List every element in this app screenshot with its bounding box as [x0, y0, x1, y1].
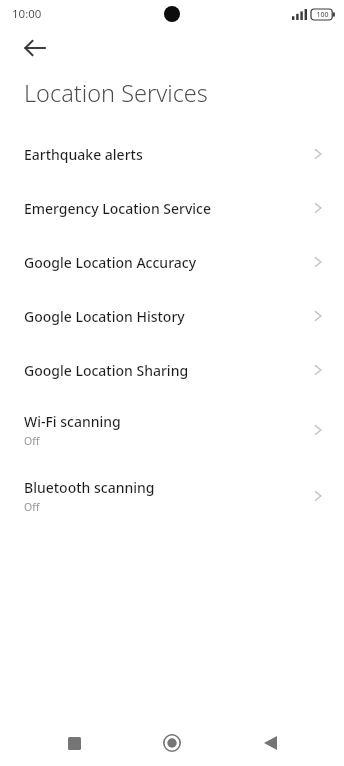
staticText: Emergency Location Service — [24, 199, 310, 218]
staticText: Google Location Sharing — [24, 361, 310, 380]
button[interactable]: Recent apps — [50, 720, 98, 766]
button[interactable]: Earthquake alerts — [0, 127, 344, 181]
button[interactable]: Back — [246, 720, 294, 766]
staticText: Off — [24, 500, 40, 514]
staticText: Off — [24, 434, 40, 448]
button[interactable]: Google Location History — [0, 289, 344, 343]
button[interactable]: Home — [148, 720, 196, 766]
button[interactable]: Google Location Accuracy — [0, 235, 344, 289]
staticText: Wi-Fi scanning — [24, 412, 121, 431]
staticText: 100 — [316, 10, 329, 20]
button[interactable]: Back — [13, 28, 57, 68]
staticText: Bluetooth scanning — [24, 478, 155, 497]
staticText: Google Location Accuracy — [24, 253, 310, 272]
staticText: Google Location History — [24, 307, 310, 326]
staticText: Location Services — [24, 77, 208, 109]
button[interactable]: Google Location Sharing — [0, 343, 344, 397]
button[interactable]: Emergency Location Service — [0, 181, 344, 235]
staticText: Earthquake alerts — [24, 145, 310, 164]
button[interactable]: Bluetooth scanning — [0, 463, 344, 529]
staticText: 10:00 — [12, 6, 42, 22]
button[interactable]: Wi-Fi scanning — [0, 397, 344, 463]
